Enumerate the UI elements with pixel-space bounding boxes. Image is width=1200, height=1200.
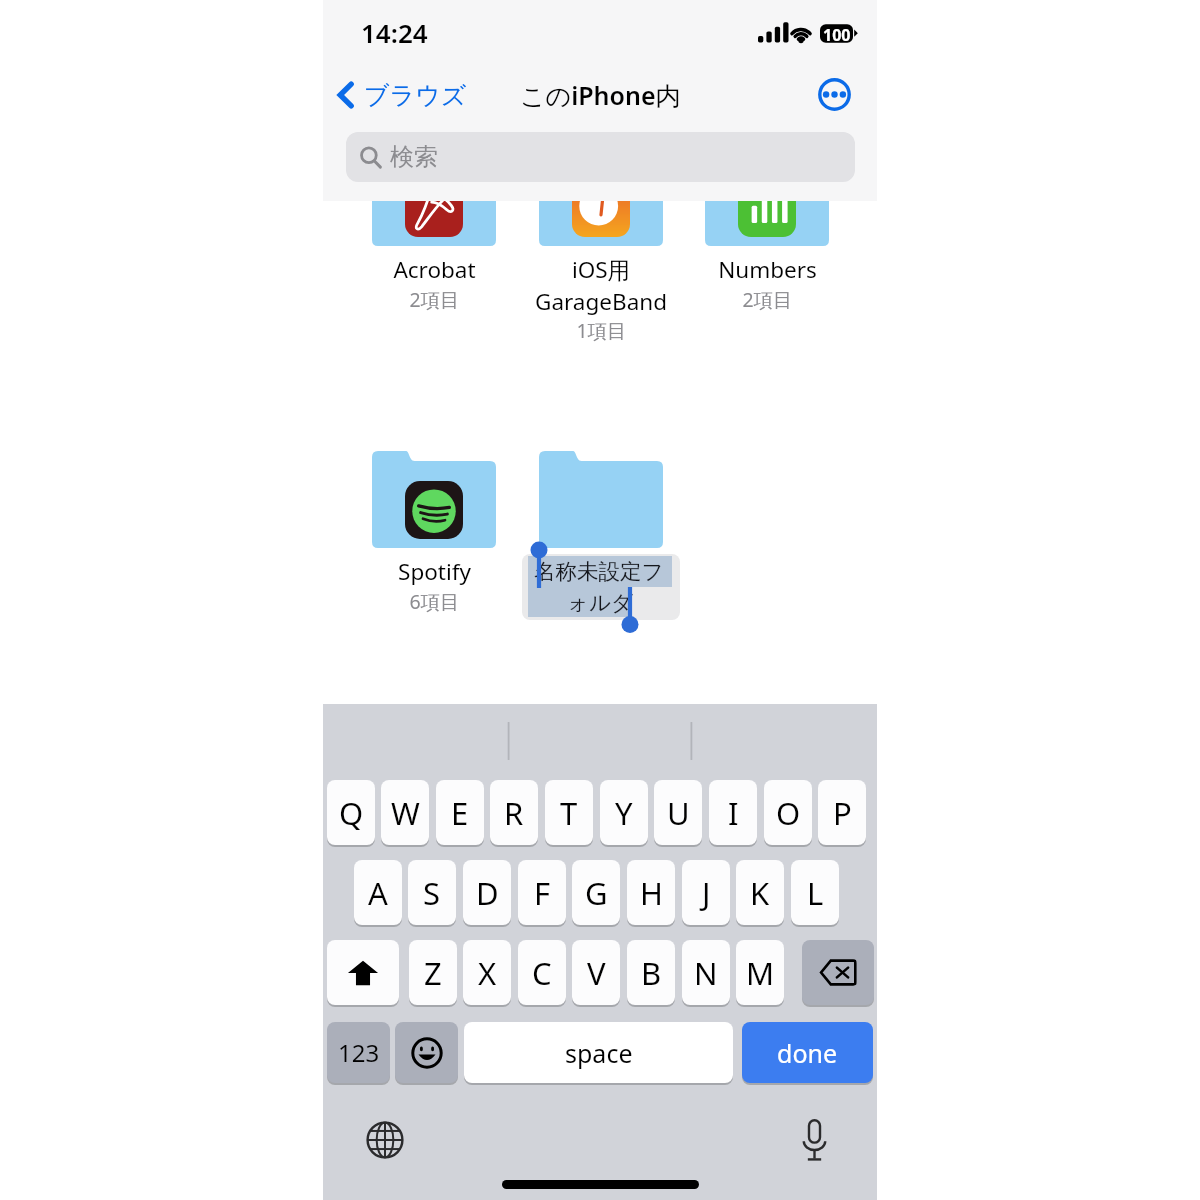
button[interactable]: O	[764, 780, 812, 845]
staticText: Acrobat	[393, 254, 476, 285]
staticText: D	[476, 872, 499, 914]
button[interactable]: Y	[600, 780, 648, 845]
staticText: 123	[338, 1036, 380, 1069]
staticText: ォルダ	[567, 589, 634, 616]
staticText: C	[532, 952, 552, 994]
staticText: P	[833, 792, 852, 834]
staticText: 14:24	[361, 15, 428, 50]
button[interactable]: C	[518, 940, 566, 1005]
button[interactable]: Numbers	[705, 149, 829, 246]
button[interactable]: G	[572, 860, 620, 925]
button[interactable]: R	[490, 780, 538, 845]
staticText: iOS用 GarageBand	[535, 254, 667, 316]
button[interactable]: K	[736, 860, 784, 925]
button[interactable]: Folder name	[522, 554, 680, 620]
staticText: T	[560, 792, 578, 834]
button[interactable]: Switch keyboard	[361, 1116, 409, 1164]
button[interactable]: ブラウズ	[332, 73, 471, 117]
staticText: H	[640, 872, 663, 914]
button[interactable]: Z	[409, 940, 457, 1005]
staticText: W	[391, 792, 420, 834]
staticText: J	[702, 872, 711, 914]
staticText: done	[777, 1036, 838, 1070]
staticText: F	[534, 872, 551, 914]
staticText: space	[565, 1036, 633, 1070]
button[interactable]: M	[736, 940, 784, 1005]
staticText: R	[504, 792, 524, 834]
button[interactable]: H	[627, 860, 675, 925]
staticText: このiPhone内	[520, 78, 681, 112]
button[interactable]: I	[709, 780, 757, 845]
staticText: B	[641, 952, 662, 994]
button[interactable]: Shift	[327, 940, 399, 1005]
button[interactable]: L	[791, 860, 839, 925]
button[interactable]: Emoji	[395, 1022, 458, 1083]
staticText: Z	[424, 952, 442, 994]
staticText: 2項目	[742, 286, 793, 313]
staticText: Y	[615, 792, 633, 834]
button[interactable]: V	[572, 940, 620, 1005]
staticText: 名称未設定フ	[534, 558, 664, 585]
staticText: Q	[339, 792, 364, 834]
staticText: M	[746, 952, 775, 994]
staticText: Spotify	[398, 556, 471, 587]
button[interactable]: Backspace	[802, 940, 874, 1005]
button[interactable]: N	[682, 940, 730, 1005]
button[interactable]: Spotify	[339, 556, 529, 615]
button[interactable]: D	[463, 860, 511, 925]
staticText: 2項目	[409, 286, 460, 313]
button[interactable]: X	[463, 940, 511, 1005]
button[interactable]: Acrobat	[372, 149, 496, 246]
button[interactable]: B	[627, 940, 675, 1005]
button[interactable]: U	[654, 780, 702, 845]
staticText: L	[807, 872, 824, 914]
button[interactable]: T	[545, 780, 593, 845]
staticText: A	[368, 872, 388, 914]
button[interactable]: Q	[327, 780, 375, 845]
button[interactable]: Folder	[539, 451, 663, 548]
button[interactable]: 検索	[346, 132, 855, 182]
staticText: 100	[823, 24, 851, 43]
button[interactable]: iOS用 GarageBand	[506, 254, 696, 344]
button[interactable]: space	[464, 1022, 733, 1083]
button[interactable]: iOS用 GarageBand	[539, 149, 663, 246]
staticText: 検索	[390, 142, 438, 172]
staticText: S	[423, 872, 441, 914]
button[interactable]: Acrobat	[339, 254, 529, 313]
staticText: K	[750, 872, 770, 914]
button[interactable]: W	[381, 780, 429, 845]
button[interactable]: J	[682, 860, 730, 925]
button[interactable]: Dictation	[790, 1116, 838, 1164]
button[interactable]: done	[742, 1022, 873, 1083]
button[interactable]: Spotify	[372, 451, 496, 548]
staticText: I	[728, 792, 739, 834]
button[interactable]: Numbers	[672, 254, 862, 313]
staticText: E	[451, 792, 469, 834]
button[interactable]: P	[818, 780, 866, 845]
button[interactable]: E	[436, 780, 484, 845]
button[interactable]: Numbers	[327, 1022, 390, 1083]
staticText: O	[776, 792, 801, 834]
staticText: Numbers	[718, 254, 817, 285]
button[interactable]: F	[518, 860, 566, 925]
button[interactable]: A	[354, 860, 402, 925]
staticText: U	[667, 792, 690, 834]
staticText: 6項目	[409, 588, 460, 615]
staticText: X	[478, 952, 497, 994]
staticText: N	[694, 952, 718, 994]
button[interactable]: More options	[818, 78, 851, 111]
button[interactable]: S	[408, 860, 456, 925]
staticText: ブラウズ	[364, 80, 467, 111]
staticText: 1項目	[576, 317, 627, 344]
staticText: V	[587, 952, 606, 994]
staticText: G	[585, 872, 608, 914]
